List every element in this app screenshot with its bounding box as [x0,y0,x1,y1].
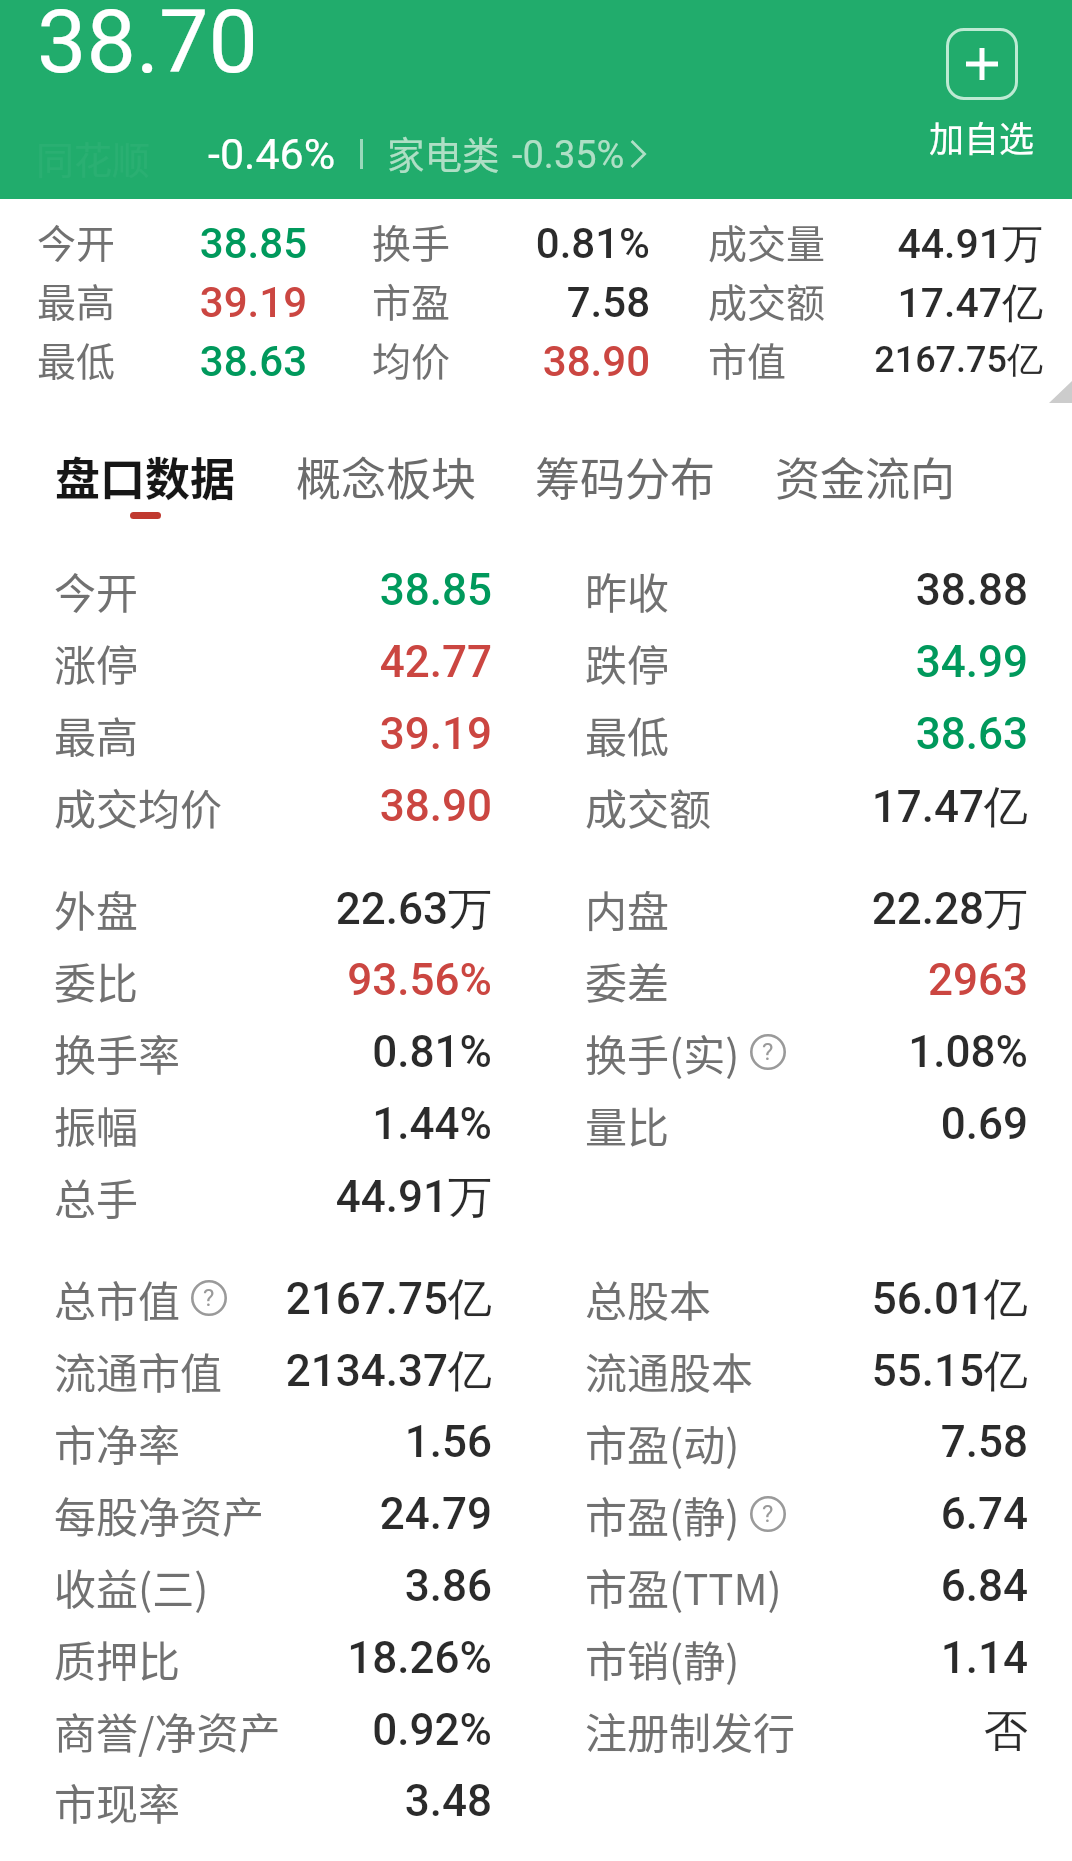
staticText: 1.14 [786,1632,1028,1684]
staticText: 外盘 [54,878,139,939]
staticText: 涨停 [54,632,139,693]
staticText: 否 [786,1704,1028,1759]
staticText: 55.15亿 [786,1344,1028,1399]
staticText: 注册制发行 [585,1700,796,1761]
staticText: 量比 [585,1094,670,1155]
staticText: 最高 [54,704,139,765]
staticText: 同花顺 [36,130,151,185]
staticText: -0.46% [208,129,336,179]
staticText: 振幅 [54,1094,139,1155]
staticText: 7.58 [448,278,650,327]
staticText: 0.92% [250,1704,492,1756]
staticText: 换手率 [54,1022,181,1083]
staticText: 2134.37亿 [250,1344,492,1399]
staticText: 总手 [54,1166,139,1227]
staticText: 换手 [372,213,451,269]
staticText: 市净率 [54,1412,181,1473]
staticText: 今开 [37,213,116,269]
staticText: 2963 [786,954,1028,1006]
staticText: 0.69 [786,1098,1028,1150]
staticText: 盘口数据 [55,444,236,509]
staticText: 资金流向 [775,444,956,509]
staticText: 7.58 [786,1416,1028,1468]
staticText: 44.91万 [818,219,1043,271]
staticText: 成交量 [708,213,826,269]
staticText: 38.90 [448,337,650,386]
button[interactable]: 加自选 [918,28,1046,162]
staticText: ? [762,1500,774,1528]
staticText: 38.63 [105,337,307,386]
staticText: 3.48 [250,1775,492,1827]
staticText: 24.79 [250,1488,492,1540]
staticText: 家电类 [387,125,500,179]
staticText: -0.35% [512,133,625,178]
button[interactable]: 概念板块 [296,444,477,512]
staticText: 44.91万 [250,1170,492,1225]
staticText: 17.47亿 [786,780,1028,835]
staticText: 市销(静) [585,1628,740,1689]
staticText: 总股本 [585,1268,712,1329]
staticText: 最低 [37,331,116,387]
staticText: 39.19 [250,708,492,760]
staticText: ? [762,1038,774,1066]
staticText: 93.56% [250,954,492,1006]
staticText: 市盈(静) [585,1484,740,1545]
staticText: 0.81% [250,1026,492,1078]
staticText: 市值 [708,331,787,387]
staticText: 跌停 [585,632,670,693]
button[interactable]: 盘口数据 [55,444,236,519]
staticText: 加自选 [929,111,1035,162]
staticText: 3.86 [250,1560,492,1612]
staticText: 市盈 [372,272,451,328]
staticText: 38.85 [105,219,307,268]
staticText: 换手(实) [585,1022,740,1083]
staticText: 34.99 [786,636,1028,688]
staticText: 最高 [37,272,116,328]
staticText: 22.63万 [250,882,492,937]
staticText: 质押比 [54,1628,181,1689]
staticText: 39.19 [105,278,307,327]
staticText: 今开 [54,560,139,621]
staticText: 38.88 [786,564,1028,616]
staticText: 市盈(动) [585,1412,740,1473]
staticText: 18.26% [250,1632,492,1684]
staticText: 2167.75亿 [250,1272,492,1327]
staticText: 总市值 [54,1268,181,1329]
staticText: 筹码分布 [535,444,716,509]
staticText: 流通股本 [585,1340,754,1401]
staticText: 最低 [585,704,670,765]
staticText: 昨收 [585,560,670,621]
staticText: 6.74 [786,1488,1028,1540]
staticText: 商誉/净资产 [54,1700,281,1761]
staticText: 38.63 [786,708,1028,760]
staticText: 均价 [372,331,451,387]
staticText: 38.90 [250,780,492,832]
staticText: 委差 [585,950,670,1011]
staticText: 1.44% [250,1098,492,1150]
staticText: 成交均价 [54,776,223,837]
button[interactable]: 筹码分布 [535,444,716,512]
staticText: 市盈(TTM) [585,1556,782,1617]
staticText: 成交额 [585,776,712,837]
staticText: 6.84 [786,1560,1028,1612]
staticText: 38.85 [250,564,492,616]
staticText: 22.28万 [786,882,1028,937]
staticText: 每股净资产 [54,1484,265,1545]
staticText: 成交额 [708,272,826,328]
staticText: ? [203,1284,215,1312]
staticText: 38.70 [37,0,259,93]
staticText: 内盘 [585,878,670,939]
button[interactable]: 资金流向 [775,444,956,512]
staticText: 收益(三) [54,1556,209,1617]
staticText: 1.56 [250,1416,492,1468]
staticText: 1.08% [786,1026,1028,1078]
staticText: 17.47亿 [818,278,1043,330]
staticText: 42.77 [250,636,492,688]
staticText: 流通市值 [54,1340,223,1401]
staticText: 委比 [54,950,139,1011]
staticText: 概念板块 [296,444,477,509]
staticText: 0.81% [448,219,650,268]
staticText: 市现率 [54,1771,181,1832]
staticText: 2167.75亿 [818,337,1043,382]
staticText: 56.01亿 [786,1272,1028,1327]
